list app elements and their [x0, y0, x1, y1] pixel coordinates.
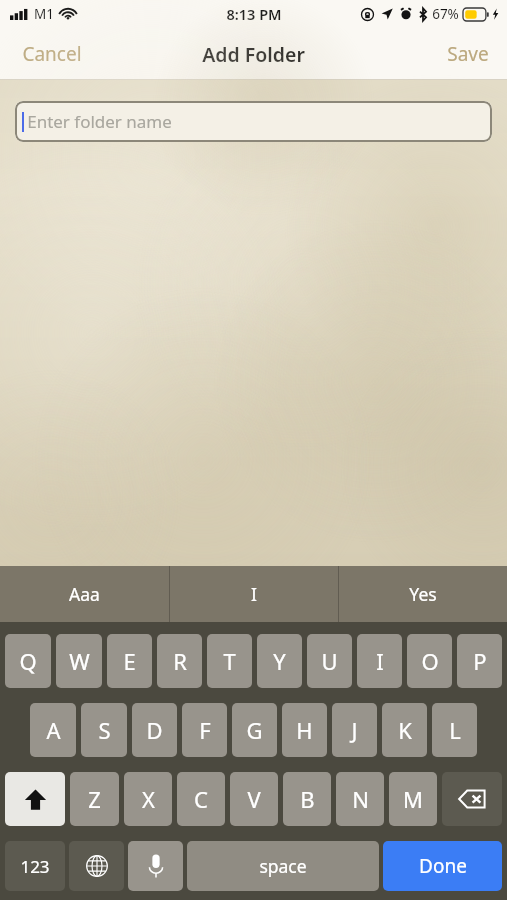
staticText: Save — [447, 41, 489, 67]
button[interactable]: J — [332, 703, 377, 757]
button[interactable]: L — [432, 703, 477, 757]
staticText: 67% — [432, 5, 459, 23]
staticText: M1 — [34, 5, 54, 23]
button[interactable]: Backspace — [442, 772, 502, 826]
staticText: K — [398, 715, 412, 745]
button[interactable]: Enter folder name — [15, 101, 492, 142]
staticText: C — [194, 784, 208, 814]
button[interactable]: F — [182, 703, 227, 757]
button[interactable]: S — [81, 703, 127, 757]
button[interactable]: 123 — [5, 841, 65, 891]
staticText: I — [376, 646, 384, 676]
button[interactable]: X — [124, 772, 172, 826]
button[interactable]: U — [307, 634, 352, 688]
button[interactable]: Change keyboard language — [69, 841, 124, 891]
staticText: B — [300, 784, 315, 814]
staticText: space — [259, 854, 307, 878]
staticText: A — [46, 715, 61, 745]
button[interactable]: Done — [383, 841, 502, 891]
staticText: D — [146, 715, 163, 745]
staticText: P — [473, 646, 487, 676]
staticText: Done — [419, 853, 467, 879]
staticText: T — [223, 646, 236, 676]
staticText: O — [421, 646, 439, 676]
staticText: S — [98, 715, 111, 745]
staticText: H — [296, 715, 313, 745]
button[interactable]: O — [407, 634, 452, 688]
button[interactable]: I — [170, 566, 338, 622]
staticText: 8:13 PM — [226, 4, 282, 24]
staticText: F — [199, 715, 211, 745]
staticText: Cancel — [22, 41, 82, 67]
staticText: R — [173, 646, 187, 676]
button[interactable]: Z — [70, 772, 119, 826]
staticText: E — [123, 646, 136, 676]
button[interactable]: G — [232, 703, 277, 757]
staticText: X — [142, 784, 155, 814]
button[interactable]: K — [382, 703, 427, 757]
button[interactable]: Dictate — [128, 841, 183, 891]
staticText: I — [251, 582, 257, 606]
button[interactable]: M — [389, 772, 437, 826]
button[interactable]: B — [283, 772, 331, 826]
button[interactable]: R — [157, 634, 202, 688]
staticText: L — [449, 715, 461, 745]
button[interactable]: H — [282, 703, 327, 757]
staticText: V — [247, 784, 261, 814]
staticText: N — [352, 784, 369, 814]
button[interactable]: D — [132, 703, 177, 757]
button[interactable]: V — [230, 772, 278, 826]
button[interactable]: space — [187, 841, 379, 891]
staticText: Y — [273, 646, 286, 676]
staticText: Q — [19, 646, 37, 676]
button[interactable]: W — [56, 634, 102, 688]
button[interactable]: I — [357, 634, 402, 688]
button[interactable]: T — [207, 634, 252, 688]
button[interactable]: E — [107, 634, 152, 688]
button[interactable]: Save — [429, 31, 507, 77]
staticText: W — [69, 646, 90, 676]
button[interactable]: Yes — [339, 566, 507, 622]
button[interactable]: Shift — [5, 772, 65, 826]
staticText: Aaa — [69, 582, 100, 606]
staticText: Z — [88, 784, 101, 814]
button[interactable]: Q — [5, 634, 51, 688]
button[interactable]: A — [30, 703, 76, 757]
staticText: Enter folder name — [27, 110, 172, 133]
staticText: U — [321, 646, 338, 676]
button[interactable]: Y — [257, 634, 302, 688]
staticText: 123 — [20, 855, 50, 878]
staticText: Add Folder — [202, 41, 305, 68]
button[interactable]: P — [457, 634, 502, 688]
button[interactable]: C — [177, 772, 225, 826]
staticText: G — [246, 715, 263, 745]
staticText: J — [351, 715, 358, 745]
staticText: Yes — [409, 582, 437, 606]
staticText: M — [403, 784, 423, 814]
button[interactable]: Aaa — [0, 566, 169, 622]
button[interactable]: N — [336, 772, 384, 826]
button[interactable]: Cancel — [0, 31, 104, 77]
